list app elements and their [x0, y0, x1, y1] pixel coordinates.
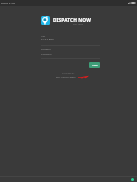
- staticText: Password: [41, 53, 52, 56]
- staticText: 0.1 K/s: [9, 2, 15, 5]
- button[interactable]: Status: [131, 178, 134, 181]
- staticText: Password: [41, 48, 51, 51]
- staticText: UID: [41, 34, 46, 37]
- staticText: 4:56: [1, 2, 5, 5]
- button[interactable]: Login: [89, 62, 100, 68]
- staticText: 9.1.0.4 Beta: [41, 38, 54, 41]
- staticText: KEY YOUR LOGIC: [56, 76, 76, 79]
- staticText: POWERED BY: [62, 72, 75, 75]
- staticText: AM: [5, 2, 8, 5]
- staticText: Login: [92, 64, 98, 67]
- staticText: DISPATCH NOW: [53, 17, 91, 24]
- staticText: PLAN. TRACK: [73, 23, 83, 25]
